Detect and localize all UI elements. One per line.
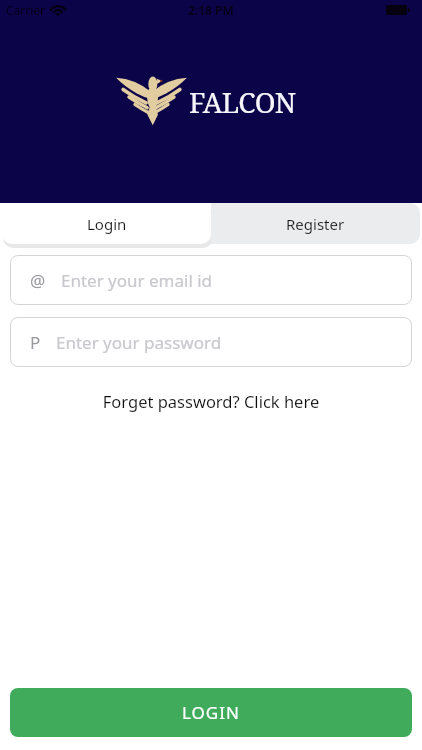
button[interactable]: Register: [211, 203, 420, 244]
button[interactable]: Login: [2, 203, 211, 244]
staticText: Enter your email id: [61, 269, 213, 292]
staticText: Carrier: [6, 2, 46, 18]
staticText: FALCON: [189, 83, 296, 121]
staticText: Register: [286, 214, 345, 234]
button[interactable]: P: [10, 317, 412, 367]
staticText: Login: [87, 214, 127, 234]
button[interactable]: Forget password? Click here: [0, 390, 422, 412]
staticText: Enter your password: [56, 331, 222, 354]
button[interactable]: LOGIN: [10, 688, 412, 737]
staticText: LOGIN: [182, 701, 240, 724]
staticText: @: [30, 269, 46, 292]
button[interactable]: @: [10, 255, 412, 305]
staticText: 2:18 PM: [188, 2, 234, 18]
staticText: P: [30, 331, 41, 354]
